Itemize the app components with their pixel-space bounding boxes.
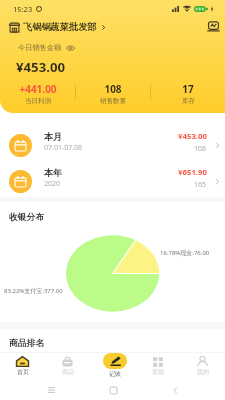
staticText: 本月 [44,131,62,142]
button[interactable]: Recents [43,382,59,398]
staticText: 商品 [62,368,74,376]
staticText: 108 [104,82,122,96]
button[interactable]: 商品 [45,352,90,380]
staticText: 记账 [109,370,121,378]
staticText: 我的 [197,368,209,376]
staticText: 发现 [152,368,164,376]
staticText: 07.01-07.08 [44,143,83,153]
staticText: 17 [182,82,194,96]
button[interactable]: Back [167,382,183,398]
staticText: 飞锅锅蔬菜批发部 [23,21,97,33]
staticText: 108 [194,144,207,154]
staticText: 商品排名 [9,338,45,349]
staticText: 当日利润 [25,97,51,104]
button[interactable]: Reports [205,19,221,34]
button[interactable]: 首页 [0,352,45,380]
staticText: 库存 [182,97,195,104]
button[interactable]: 发现 [135,352,180,380]
staticText: ¥651.90 [178,167,207,178]
staticText: 15:23 [13,4,33,14]
staticText: 销售数量 [100,97,126,104]
staticText: 165 [194,180,207,190]
staticText: ¥453.00 [178,131,207,142]
button[interactable]: 记账 [103,353,127,378]
button[interactable]: 飞锅锅蔬菜批发部 [9,21,107,33]
staticText: ¥453.00 [16,58,65,76]
staticText: 本年 [44,167,62,178]
staticText: 收银分布 [9,212,45,223]
staticText: 2020 [44,179,61,189]
button[interactable]: Home [105,382,121,398]
staticText: 16.78%现金:76.00 [160,249,210,257]
staticText: 首页 [17,368,29,376]
button[interactable]: 本月 [0,127,225,163]
staticText: 今日销售金额 [18,43,62,52]
staticText: +441.00 [19,82,57,96]
button[interactable]: 我的 [180,352,225,380]
staticText: 83.22%支付宝:377.00 [4,287,63,295]
button[interactable]: Toggle amount visibility [66,45,75,51]
button[interactable]: 本年 [0,163,225,199]
